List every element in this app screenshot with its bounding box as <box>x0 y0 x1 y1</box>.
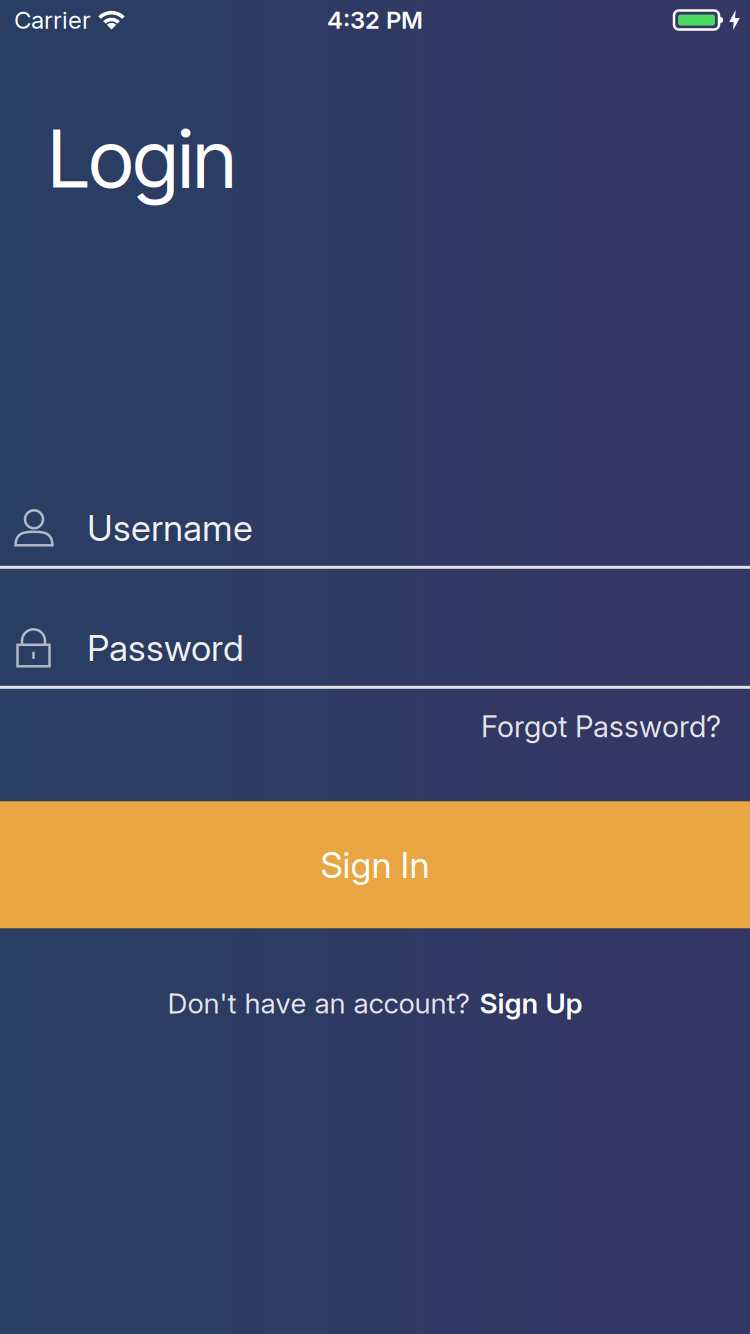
button[interactable]: Password <box>0 620 750 676</box>
staticText: Carrier <box>14 5 91 34</box>
staticText: Forgot Password? <box>481 709 721 744</box>
staticText: Don't have an account? <box>167 986 469 1020</box>
button[interactable]: Sign In <box>0 801 750 928</box>
button[interactable]: Don't have an account? <box>167 986 582 1020</box>
staticText: Password <box>87 626 244 670</box>
staticText: Sign Up <box>479 986 582 1020</box>
button[interactable]: Forgot Password? <box>0 709 750 744</box>
button[interactable]: Username <box>0 500 750 556</box>
staticText: Sign In <box>320 843 429 887</box>
staticText: 4:32 PM <box>327 5 423 34</box>
staticText: Username <box>87 506 253 550</box>
staticText: Login <box>48 110 236 207</box>
